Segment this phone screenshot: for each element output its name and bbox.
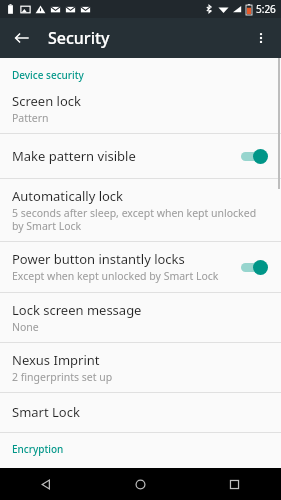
staticText: 2 fingerprints set up xyxy=(12,370,113,384)
button[interactable]: Nexus Imprint xyxy=(0,343,281,392)
staticText: Screen lock xyxy=(12,92,81,110)
button[interactable]: Recent apps xyxy=(187,468,281,500)
button[interactable]: Back xyxy=(8,24,36,52)
staticText: 5:26 xyxy=(256,2,276,16)
staticText: Smart Lock xyxy=(12,403,80,421)
staticText: Power button instantly locks xyxy=(12,250,185,268)
staticText: Automatically lock xyxy=(12,187,124,205)
button[interactable]: More options xyxy=(247,24,275,52)
button[interactable]: Smart Lock xyxy=(0,393,281,432)
button[interactable]: Lock screen message xyxy=(0,293,281,342)
staticText: Security xyxy=(48,27,110,49)
staticText: Nexus Imprint xyxy=(12,351,100,369)
button[interactable]: Automatically lock xyxy=(0,179,281,241)
button[interactable]: Home xyxy=(93,468,187,500)
staticText: 5 seconds after sleep, except when kept … xyxy=(12,206,267,233)
staticText: Encryption xyxy=(12,442,64,456)
staticText: Device security xyxy=(12,68,84,82)
staticText: Except when kept unlocked by Smart Lock xyxy=(12,269,219,283)
other: Toggle on xyxy=(239,259,269,275)
button[interactable]: Screen lock xyxy=(0,85,281,133)
button[interactable]: Make pattern visible xyxy=(0,134,281,178)
staticText: Lock screen message xyxy=(12,301,142,319)
button[interactable]: Back xyxy=(0,468,93,500)
button[interactable]: Power button instantly locks xyxy=(0,242,281,292)
other: Toggle on xyxy=(239,148,269,164)
staticText: Make pattern visible xyxy=(12,147,136,165)
staticText: Pattern xyxy=(12,111,49,125)
staticText: None xyxy=(12,320,39,334)
